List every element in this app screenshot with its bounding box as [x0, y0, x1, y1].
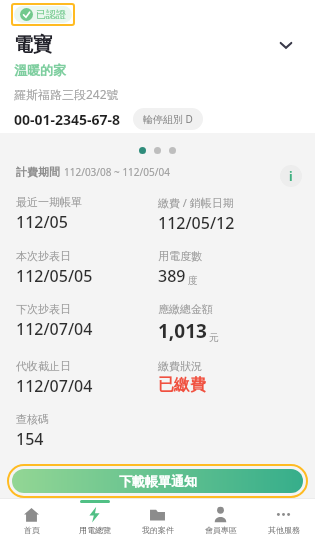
- staticText: i: [289, 168, 293, 184]
- staticText: 代收截止日: [16, 359, 71, 373]
- staticText: 112/05/05: [16, 265, 93, 287]
- staticText: 112/07/04: [16, 318, 93, 340]
- staticText: 已認證: [36, 8, 66, 21]
- button[interactable]: 已認證: [14, 6, 72, 23]
- staticText: 羅斯福路三段242號: [14, 86, 119, 102]
- staticText: 我的案件: [142, 525, 174, 535]
- staticText: 已繳費: [158, 375, 206, 395]
- staticText: 電寶: [14, 33, 52, 57]
- staticText: 元: [209, 331, 219, 344]
- staticText: 389: [158, 265, 186, 287]
- staticText: 用電度數: [158, 249, 202, 263]
- button[interactable]: 我的案件: [126, 499, 189, 548]
- staticText: 112/03/08 ~ 112/05/04: [64, 165, 170, 179]
- staticText: 154: [16, 428, 44, 450]
- staticText: 會員專區: [205, 525, 237, 535]
- staticText: 溫暖的家: [14, 62, 66, 78]
- staticText: 應繳總金額: [158, 302, 213, 316]
- staticText: 度: [188, 274, 198, 287]
- staticText: 112/07/04: [16, 375, 93, 397]
- staticText: 下次抄表日: [16, 302, 71, 316]
- staticText: 1,013: [158, 318, 207, 344]
- button[interactable]: 用電總覽: [63, 499, 126, 548]
- staticText: 其他服務: [268, 525, 300, 535]
- staticText: 112/05/12: [158, 212, 235, 234]
- staticText: 查核碼: [16, 412, 49, 426]
- button[interactable]: Information: [280, 165, 302, 187]
- staticText: 繳費狀況: [158, 359, 202, 373]
- button[interactable]: Expand account selector: [271, 30, 301, 60]
- staticText: 首頁: [24, 525, 40, 535]
- button[interactable]: 輪停組別 D: [133, 108, 203, 130]
- staticText: 下載帳單通知: [119, 473, 197, 489]
- staticText: 計費期間: [16, 165, 60, 179]
- button[interactable]: 首頁: [0, 499, 63, 548]
- button[interactable]: 其他服務: [252, 499, 315, 548]
- staticText: 112/05: [16, 211, 68, 233]
- staticText: 最近一期帳單: [16, 195, 82, 209]
- button[interactable]: 下載帳單通知: [12, 469, 303, 493]
- button[interactable]: 會員專區: [189, 499, 252, 548]
- staticText: 繳費 / 銷帳日期: [158, 195, 234, 210]
- staticText: 輪停組別 D: [143, 112, 193, 126]
- staticText: 本次抄表日: [16, 249, 71, 263]
- staticText: 用電總覽: [79, 525, 111, 535]
- staticText: 00-01-2345-67-8: [14, 110, 121, 129]
